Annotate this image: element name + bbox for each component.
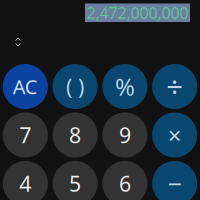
staticText: AC	[13, 73, 38, 100]
staticText: %	[115, 71, 135, 102]
staticText: 8	[69, 121, 81, 149]
staticText: 4	[19, 169, 31, 198]
staticText: 5	[69, 169, 81, 198]
button[interactable]: −	[152, 161, 197, 200]
staticText: ×	[168, 119, 182, 151]
button[interactable]: 4	[3, 161, 48, 200]
button[interactable]: 2,472,000,000	[85, 3, 190, 22]
button[interactable]: ÷	[152, 64, 197, 109]
staticText: ÷	[166, 67, 183, 106]
button[interactable]: 7	[3, 112, 48, 157]
staticText: ( )	[66, 72, 84, 101]
button[interactable]: ( )	[53, 64, 98, 109]
button[interactable]: 6	[102, 161, 147, 200]
staticText: 9	[119, 121, 131, 149]
button[interactable]: %	[102, 64, 147, 109]
button[interactable]: Scroll to change value	[7, 31, 29, 53]
staticText: −	[168, 167, 182, 200]
button[interactable]: AC	[3, 64, 48, 109]
staticText: 2,472,000,000	[86, 2, 188, 23]
staticText: 6	[119, 169, 131, 198]
button[interactable]: 5	[53, 161, 98, 200]
button[interactable]: 8	[53, 112, 98, 157]
button[interactable]: ×	[152, 112, 197, 157]
button[interactable]: 9	[102, 112, 147, 157]
staticText: 7	[19, 121, 31, 149]
